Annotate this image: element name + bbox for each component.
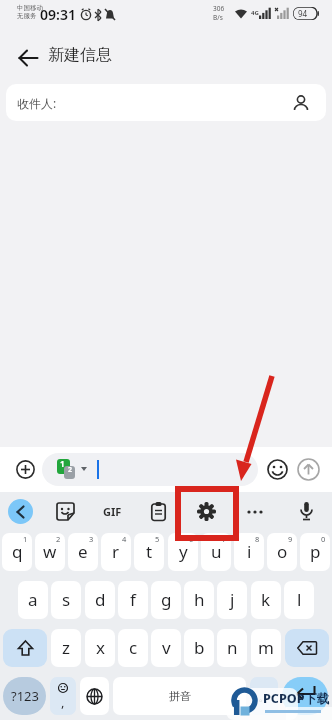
button[interactable]: b bbox=[184, 629, 214, 667]
staticText: r bbox=[112, 540, 120, 563]
staticText: 1 bbox=[60, 458, 65, 469]
staticText: b bbox=[194, 636, 205, 659]
staticText: e bbox=[78, 540, 88, 563]
button[interactable] bbox=[264, 456, 290, 482]
staticText: o bbox=[277, 540, 288, 563]
staticText: 中国移动 bbox=[17, 4, 43, 12]
button[interactable]: , bbox=[50, 677, 76, 715]
button[interactable]: x bbox=[85, 629, 115, 667]
button[interactable] bbox=[294, 499, 319, 524]
staticText: d bbox=[95, 588, 106, 611]
button[interactable]: z bbox=[51, 629, 81, 667]
button[interactable] bbox=[13, 457, 37, 481]
staticText: , bbox=[61, 693, 65, 711]
button[interactable]: u bbox=[201, 533, 231, 571]
button[interactable]: y bbox=[168, 533, 198, 571]
button[interactable] bbox=[80, 677, 109, 715]
staticText: z bbox=[62, 636, 70, 659]
button[interactable]: s bbox=[51, 581, 81, 619]
staticText: 09:31 bbox=[40, 5, 76, 24]
button[interactable]: l bbox=[284, 581, 314, 619]
button[interactable]: c bbox=[118, 629, 148, 667]
staticText: c bbox=[129, 636, 138, 659]
button[interactable]: j bbox=[217, 581, 247, 619]
button[interactable]: w bbox=[35, 533, 65, 571]
staticText: 9 bbox=[288, 534, 293, 544]
staticText: 6 bbox=[189, 534, 194, 544]
staticText: 0 bbox=[321, 534, 326, 544]
button[interactable] bbox=[295, 456, 321, 482]
staticText: 拼音 bbox=[169, 689, 191, 703]
button[interactable]: q bbox=[2, 533, 32, 571]
staticText: k bbox=[261, 588, 271, 611]
staticText: i bbox=[247, 540, 252, 563]
staticText: 3 bbox=[89, 534, 94, 544]
staticText: h bbox=[194, 588, 205, 611]
staticText: q bbox=[12, 540, 23, 563]
staticText: 306 bbox=[213, 4, 225, 13]
button[interactable] bbox=[53, 499, 78, 524]
staticText: 7 bbox=[222, 534, 227, 544]
staticText: GIF bbox=[103, 504, 122, 519]
button[interactable] bbox=[282, 677, 328, 715]
button[interactable]: h bbox=[184, 581, 214, 619]
button[interactable]: k bbox=[251, 581, 281, 619]
staticText: y bbox=[179, 540, 188, 563]
button[interactable]: 1 bbox=[42, 453, 258, 486]
button[interactable]: a bbox=[18, 581, 48, 619]
button[interactable]: g bbox=[151, 581, 181, 619]
staticText: p bbox=[310, 540, 321, 563]
staticText: 无服务 bbox=[17, 12, 37, 20]
button[interactable]: m bbox=[251, 629, 281, 667]
button[interactable] bbox=[146, 499, 171, 524]
button[interactable] bbox=[242, 499, 267, 524]
button[interactable]: e bbox=[68, 533, 98, 571]
button[interactable]: 。 bbox=[250, 677, 278, 715]
button[interactable]: v bbox=[151, 629, 181, 667]
staticText: 收件人: bbox=[17, 95, 57, 111]
staticText: 1 bbox=[23, 534, 28, 544]
staticText: u bbox=[211, 540, 222, 563]
staticText: l bbox=[297, 588, 302, 611]
staticText: n bbox=[227, 636, 238, 659]
button[interactable]: ?123 bbox=[3, 677, 46, 715]
staticText: 5 bbox=[155, 534, 160, 544]
staticText: 新建信息 bbox=[48, 45, 112, 65]
staticText: 2 bbox=[56, 534, 61, 544]
button[interactable] bbox=[10, 45, 46, 71]
button[interactable] bbox=[8, 499, 33, 524]
staticText: 4 bbox=[122, 534, 127, 544]
button[interactable]: t bbox=[134, 533, 164, 571]
button[interactable]: 收件人: bbox=[6, 84, 326, 121]
staticText: j bbox=[230, 588, 235, 611]
button[interactable]: 拼音 bbox=[113, 677, 246, 715]
staticText: 94 bbox=[298, 8, 308, 19]
staticText: w bbox=[43, 540, 57, 563]
button[interactable]: GIF bbox=[96, 499, 128, 524]
button[interactable]: r bbox=[101, 533, 131, 571]
staticText: v bbox=[162, 636, 171, 659]
button[interactable] bbox=[285, 629, 329, 667]
staticText: f bbox=[130, 588, 136, 611]
staticText: 2 bbox=[68, 465, 73, 475]
button[interactable] bbox=[3, 629, 47, 667]
staticText: x bbox=[96, 636, 105, 659]
staticText: ?123 bbox=[11, 687, 39, 705]
staticText: t bbox=[146, 540, 153, 563]
staticText: g bbox=[161, 588, 172, 611]
button[interactable] bbox=[194, 499, 219, 524]
button[interactable]: f bbox=[118, 581, 148, 619]
staticText: m bbox=[258, 636, 274, 659]
button[interactable]: n bbox=[217, 629, 247, 667]
staticText: 4G bbox=[251, 9, 259, 17]
staticText: 。 bbox=[258, 689, 270, 704]
button[interactable]: i bbox=[234, 533, 264, 571]
button[interactable]: o bbox=[267, 533, 297, 571]
staticText: s bbox=[62, 588, 71, 611]
staticText: B/s bbox=[213, 13, 223, 22]
button[interactable]: d bbox=[85, 581, 115, 619]
staticText: a bbox=[28, 588, 38, 611]
button[interactable]: p bbox=[300, 533, 330, 571]
staticText: 8 bbox=[255, 534, 260, 544]
staticText: PCPOP下载 bbox=[263, 690, 330, 707]
